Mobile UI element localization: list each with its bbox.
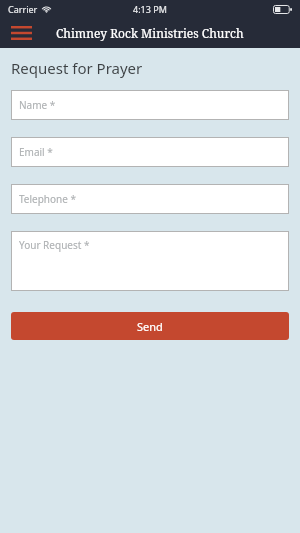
button[interactable]: Send (11, 312, 289, 340)
staticText: Email * (19, 145, 53, 159)
staticText: Name * (19, 98, 56, 112)
staticText: 4:13 PM (133, 3, 167, 15)
button[interactable]: Open navigation menu (6, 20, 36, 46)
staticText: Send (137, 319, 163, 334)
staticText: Request for Prayer (11, 58, 143, 78)
staticText: Telephone * (19, 192, 77, 206)
button[interactable]: Email * (11, 137, 289, 167)
button[interactable]: Your Request * (11, 231, 289, 291)
staticText: Carrier (8, 3, 38, 15)
staticText: Chimney Rock Ministries Church (56, 25, 244, 41)
button[interactable]: Name * (11, 90, 289, 120)
staticText: Your Request * (19, 238, 90, 252)
button[interactable]: Telephone * (11, 184, 289, 214)
